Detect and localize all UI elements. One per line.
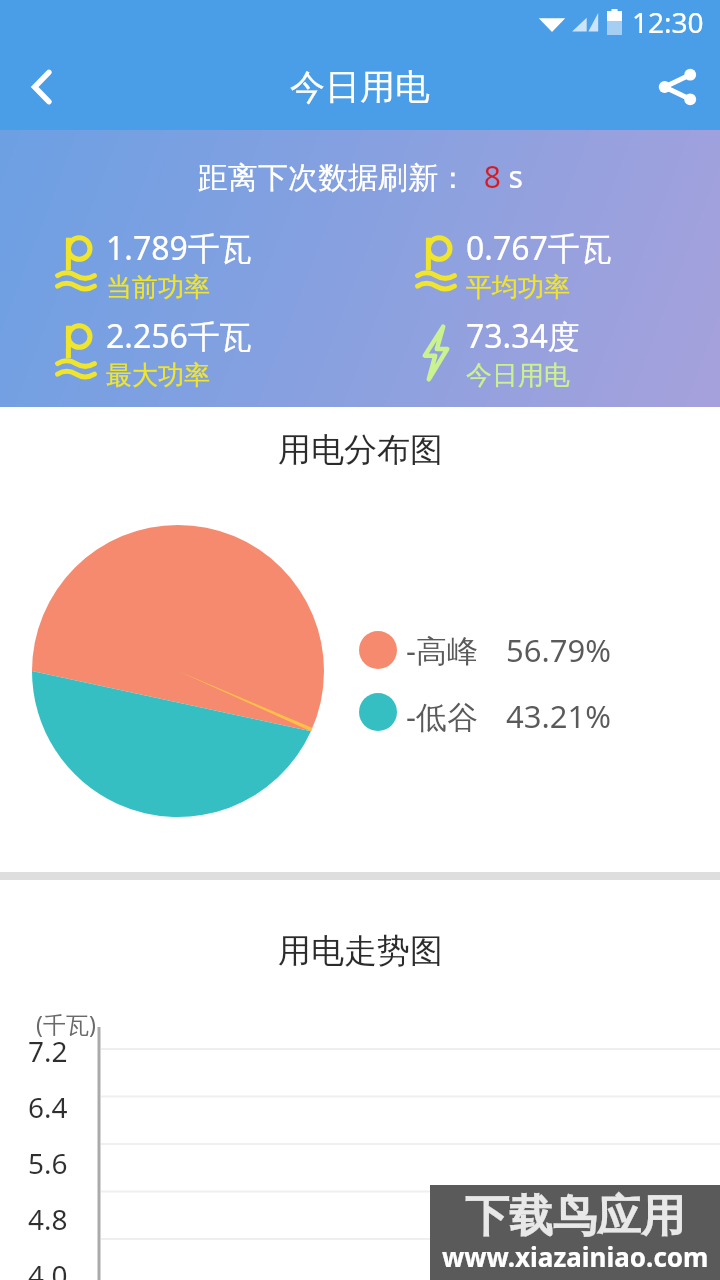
staticText: 73.34度 [466, 314, 580, 358]
staticText: 12:30 [632, 3, 704, 41]
staticText: 6.4 [28, 1088, 68, 1126]
staticText: 当前功率 [106, 271, 210, 304]
staticText: 2.256千瓦 [106, 314, 252, 358]
staticText: 最大功率 [106, 359, 210, 392]
staticText: (千瓦) [36, 1008, 96, 1039]
button[interactable]: Share [634, 44, 720, 130]
staticText: 用电走势图 [278, 930, 443, 972]
staticText: 0.767千瓦 [466, 226, 612, 270]
staticText: -高峰 [406, 629, 478, 671]
staticText: 4.0 [28, 1256, 68, 1280]
staticText: www.xiazainiao.com [442, 1239, 709, 1274]
staticText: 4.8 [28, 1200, 68, 1238]
staticText: -低谷 [406, 695, 478, 737]
staticText: 今日用电 [466, 359, 570, 392]
staticText: 1.789千瓦 [106, 226, 252, 270]
staticText: 56.79% [506, 629, 611, 671]
staticText: 下载鸟应用 [465, 1189, 685, 1244]
staticText: 用电分布图 [278, 429, 443, 471]
staticText: 平均功率 [466, 271, 570, 304]
staticText: 43.21% [506, 695, 611, 737]
staticText: 7.2 [28, 1032, 68, 1070]
staticText: 5.6 [28, 1144, 68, 1182]
staticText: 距离下次数据刷新： 8 s [198, 156, 523, 197]
button[interactable]: Back [0, 44, 86, 130]
staticText: 今日用电 [290, 65, 430, 109]
